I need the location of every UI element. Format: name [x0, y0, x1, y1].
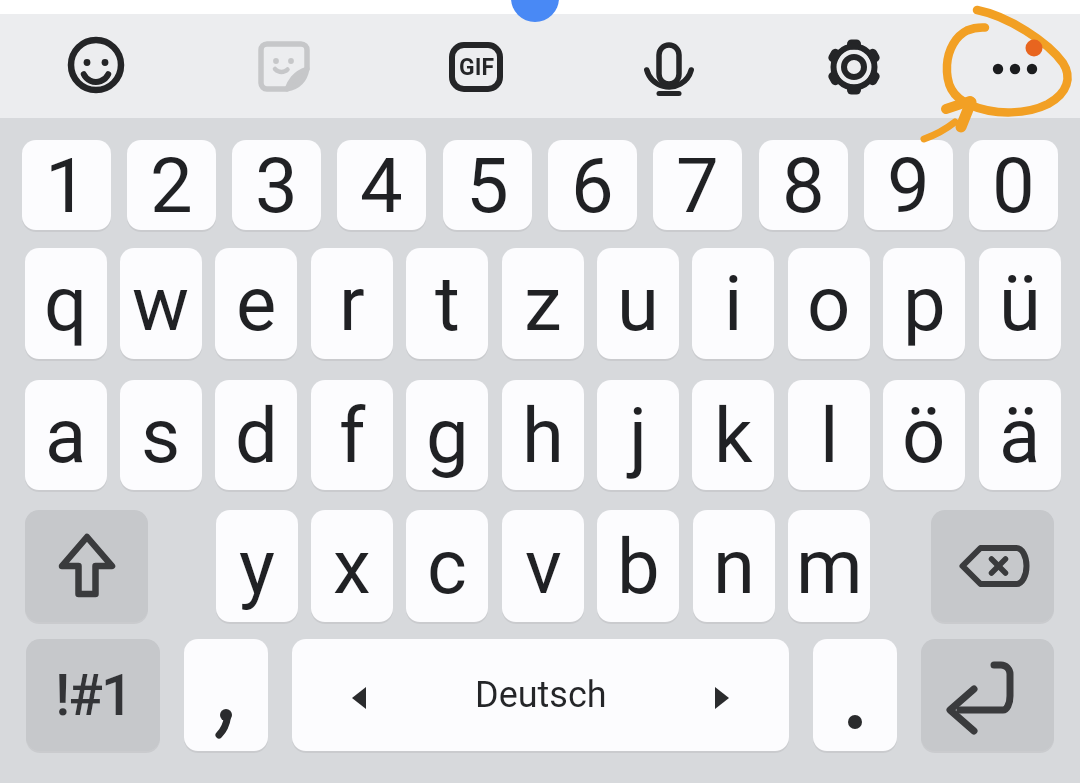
button[interactable] [438, 29, 514, 105]
staticText: d [235, 391, 278, 480]
button[interactable]: ü [979, 248, 1061, 359]
staticText: k [714, 391, 753, 480]
button[interactable]: l [788, 380, 870, 490]
staticText: !#1 [55, 662, 132, 729]
button[interactable]: s [120, 380, 202, 490]
staticText: s [141, 391, 181, 480]
staticText: h [522, 391, 564, 480]
button[interactable]: a [25, 380, 107, 490]
staticText: f [339, 391, 366, 480]
button[interactable]: e [215, 248, 297, 359]
button[interactable]: Deutsch [292, 639, 789, 751]
staticText: ä [999, 391, 1041, 480]
button[interactable]: ö [883, 380, 965, 490]
staticText: o [807, 259, 851, 348]
staticText: ü [999, 259, 1041, 348]
button[interactable]: 7 [653, 140, 742, 230]
button[interactable]: p [883, 248, 965, 359]
button[interactable]: c [406, 510, 488, 622]
staticText: j [629, 391, 648, 480]
staticText: b [617, 522, 660, 611]
staticText: 6 [571, 141, 614, 230]
button[interactable] [931, 510, 1054, 622]
button[interactable] [58, 27, 134, 103]
button[interactable]: q [25, 248, 107, 359]
button[interactable]: z [502, 248, 584, 359]
staticText: 9 [887, 141, 930, 230]
staticText: ö [902, 391, 946, 480]
button[interactable]: 3 [232, 140, 321, 230]
staticText: l [820, 391, 839, 480]
button[interactable]: 0 [969, 140, 1058, 230]
staticText: 3 [255, 141, 298, 230]
staticText: m [796, 522, 863, 611]
staticText: x [333, 522, 371, 611]
staticText: 2 [150, 141, 193, 230]
staticText: e [236, 259, 277, 348]
button[interactable]: o [788, 248, 870, 359]
staticText: 1 [45, 141, 88, 230]
staticText: 7 [676, 141, 719, 230]
button[interactable]: j [597, 380, 679, 490]
button[interactable]: w [120, 248, 202, 359]
staticText: n [713, 522, 755, 611]
staticText: 8 [782, 141, 825, 230]
staticText: i [724, 259, 743, 348]
staticText: t [435, 259, 460, 348]
staticText: w [132, 259, 190, 348]
button[interactable]: ä [979, 380, 1061, 490]
staticText: 4 [360, 141, 403, 230]
button[interactable]: k [692, 380, 774, 490]
button[interactable] [184, 639, 268, 751]
staticText: p [903, 259, 946, 348]
button[interactable]: 9 [864, 140, 953, 230]
button[interactable] [813, 639, 897, 751]
button[interactable]: 6 [548, 140, 637, 230]
staticText: g [426, 391, 469, 480]
staticText: v [525, 522, 562, 611]
button[interactable]: d [215, 380, 297, 490]
staticText: y [239, 522, 275, 611]
button[interactable] [25, 510, 148, 622]
button[interactable]: m [788, 510, 870, 622]
button[interactable] [246, 28, 322, 104]
staticText: 5 [466, 141, 509, 230]
button[interactable]: u [597, 248, 679, 359]
staticText: a [45, 391, 87, 480]
button[interactable]: y [216, 510, 298, 622]
button[interactable]: i [692, 248, 774, 359]
staticText: r [339, 259, 365, 348]
button[interactable] [977, 31, 1053, 107]
staticText: GIF [459, 54, 494, 81]
button[interactable] [631, 30, 707, 106]
button[interactable]: 1 [22, 140, 111, 230]
staticText: c [427, 522, 467, 611]
button[interactable]: !#1 [26, 639, 160, 751]
staticText: 0 [992, 141, 1035, 230]
button[interactable]: 5 [443, 140, 532, 230]
button[interactable]: b [597, 510, 679, 622]
staticText: Deutsch [475, 674, 607, 716]
button[interactable]: g [406, 380, 488, 490]
button[interactable]: x [311, 510, 393, 622]
button[interactable] [816, 29, 892, 105]
button[interactable]: 8 [759, 140, 848, 230]
staticText: q [44, 259, 88, 348]
button[interactable]: r [311, 248, 393, 359]
button[interactable] [921, 639, 1054, 751]
button[interactable]: v [502, 510, 584, 622]
button[interactable]: 4 [337, 140, 426, 230]
button[interactable]: 2 [127, 140, 216, 230]
button[interactable]: n [693, 510, 775, 622]
staticText: z [524, 259, 562, 348]
button[interactable]: f [311, 380, 393, 490]
button[interactable]: t [406, 248, 488, 359]
button[interactable]: h [502, 380, 584, 490]
staticText: u [617, 259, 659, 348]
